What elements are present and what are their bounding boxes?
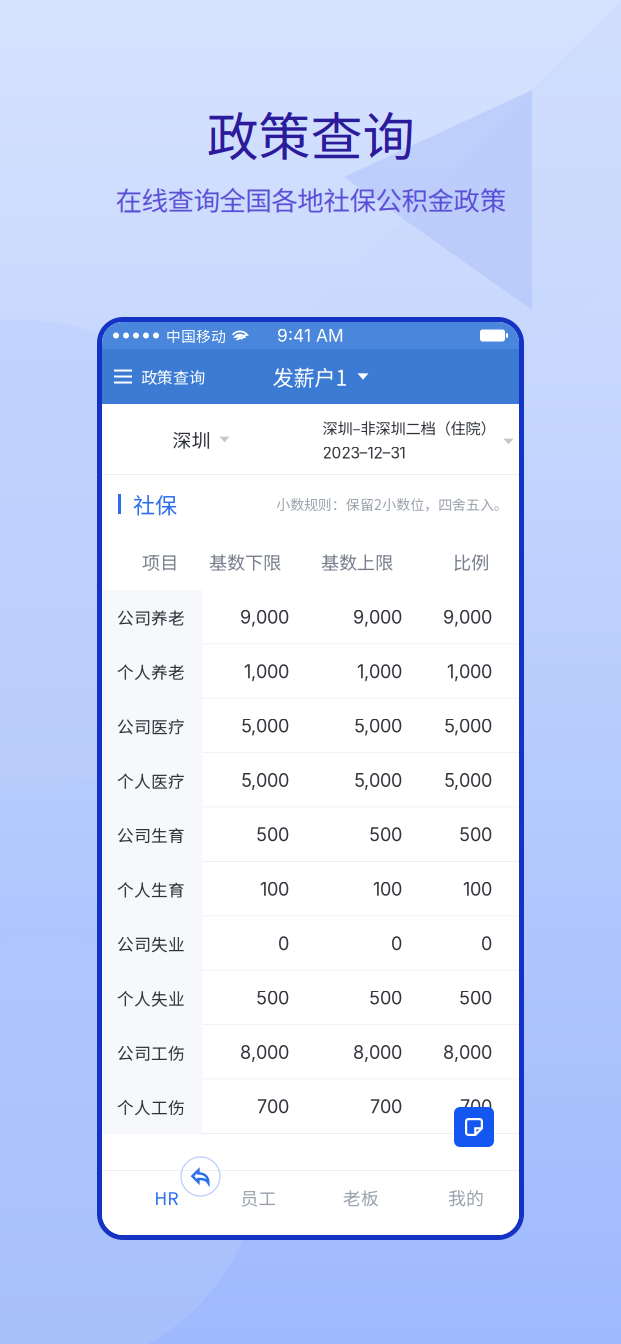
staticText: 700 bbox=[370, 1096, 402, 1118]
staticText: 个人养老 bbox=[117, 659, 185, 684]
button[interactable]: 个人养老 bbox=[102, 644, 519, 699]
button[interactable]: 个人工伤 bbox=[102, 1080, 519, 1134]
button[interactable]: 公司养老 bbox=[102, 590, 519, 644]
staticText: 0 bbox=[481, 933, 492, 954]
staticText: 比例 bbox=[453, 548, 489, 575]
staticText: 1,000 bbox=[357, 661, 402, 682]
staticText: 500 bbox=[369, 824, 402, 846]
staticText: 0 bbox=[391, 933, 402, 954]
staticText: 5,000 bbox=[241, 769, 289, 791]
staticText: 700 bbox=[460, 1096, 492, 1118]
staticText: 深圳 bbox=[172, 426, 210, 453]
staticText: 公司生育 bbox=[117, 823, 185, 847]
button[interactable]: HR bbox=[102, 1170, 206, 1235]
staticText: 9:41 AM bbox=[277, 325, 344, 346]
button[interactable]: 老板 bbox=[310, 1170, 415, 1235]
staticText: 公司养老 bbox=[117, 605, 185, 629]
staticText: 8,000 bbox=[353, 1041, 402, 1063]
staticText: 政策查询 bbox=[141, 365, 205, 388]
button[interactable]: 深圳–非深圳二档（住院） bbox=[300, 404, 519, 475]
staticText: 2023–12–31 bbox=[322, 444, 405, 462]
staticText: 0 bbox=[278, 933, 289, 954]
button[interactable]: 个人生育 bbox=[102, 862, 519, 916]
staticText: 700 bbox=[257, 1096, 289, 1118]
staticText: 个人生育 bbox=[117, 877, 185, 901]
staticText: 员工 bbox=[240, 1185, 276, 1210]
button[interactable]: 个人失业 bbox=[102, 971, 519, 1025]
staticText: 项目 bbox=[142, 548, 178, 575]
button[interactable]: New note bbox=[454, 1107, 494, 1147]
staticText: 100 bbox=[260, 878, 289, 900]
staticText: 5,000 bbox=[444, 769, 492, 791]
staticText: 500 bbox=[459, 987, 492, 1009]
button[interactable]: 我的 bbox=[415, 1170, 519, 1235]
staticText: 5,000 bbox=[444, 715, 492, 737]
button[interactable]: 公司工伤 bbox=[102, 1025, 519, 1080]
staticText: 社保 bbox=[133, 488, 177, 520]
staticText: 500 bbox=[256, 824, 289, 846]
button[interactable]: 公司失业 bbox=[102, 916, 519, 971]
staticText: 个人医疗 bbox=[117, 768, 185, 792]
staticText: 9,000 bbox=[353, 606, 402, 628]
button[interactable]: Back bbox=[181, 1157, 220, 1196]
button[interactable]: 发薪户1 bbox=[272, 349, 368, 404]
staticText: 公司医疗 bbox=[117, 714, 185, 738]
staticText: 500 bbox=[459, 824, 492, 846]
staticText: 公司工伤 bbox=[117, 1040, 185, 1064]
staticText: 政策查询 bbox=[206, 95, 414, 171]
staticText: 8,000 bbox=[443, 1041, 492, 1063]
button[interactable]: 公司生育 bbox=[102, 808, 519, 862]
staticText: 老板 bbox=[343, 1185, 379, 1210]
staticText: 1,000 bbox=[244, 661, 289, 682]
button[interactable]: 公司医疗 bbox=[102, 699, 519, 753]
staticText: 公司失业 bbox=[117, 931, 185, 956]
staticText: 9,000 bbox=[443, 606, 492, 628]
staticText: 个人工伤 bbox=[117, 1095, 185, 1119]
staticText: 100 bbox=[373, 878, 402, 900]
staticText: 基数下限 bbox=[209, 548, 281, 575]
staticText: 发薪户1 bbox=[272, 361, 347, 392]
staticText: 中国移动 bbox=[166, 325, 226, 346]
button[interactable]: 员工 bbox=[206, 1170, 310, 1235]
staticText: 9,000 bbox=[240, 606, 289, 628]
staticText: 深圳–非深圳二档（住院） bbox=[322, 417, 495, 439]
staticText: 5,000 bbox=[354, 715, 402, 737]
staticText: 我的 bbox=[448, 1185, 484, 1210]
staticText: 500 bbox=[369, 987, 402, 1009]
staticText: 基数上限 bbox=[321, 548, 393, 575]
staticText: 小数规则：保留2小数位，四舍五入。 bbox=[276, 494, 508, 514]
staticText: 8,000 bbox=[240, 1041, 289, 1063]
button[interactable]: 政策查询 bbox=[102, 349, 215, 404]
staticText: 5,000 bbox=[354, 769, 402, 791]
button[interactable]: 个人医疗 bbox=[102, 753, 519, 808]
button[interactable]: 深圳 bbox=[102, 404, 300, 475]
staticText: HR bbox=[154, 1185, 178, 1210]
staticText: 500 bbox=[256, 987, 289, 1009]
staticText: 个人失业 bbox=[117, 986, 185, 1010]
staticText: 5,000 bbox=[241, 715, 289, 737]
staticText: 1,000 bbox=[447, 661, 492, 682]
staticText: 在线查询全国各地社保公积金政策 bbox=[115, 180, 505, 218]
staticText: 100 bbox=[463, 878, 492, 900]
